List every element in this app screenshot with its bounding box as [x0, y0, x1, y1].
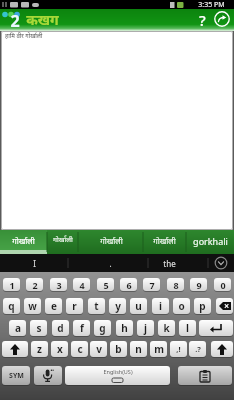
button[interactable]: y	[109, 298, 126, 314]
staticText: o	[178, 299, 185, 313]
staticText: गोर्खाली	[153, 235, 176, 246]
button[interactable]: गोर्खाली	[79, 229, 143, 251]
button[interactable]: s	[30, 320, 47, 336]
staticText: .	[109, 258, 112, 269]
staticText: 4	[79, 279, 85, 291]
staticText: 8	[173, 279, 179, 291]
staticText: g	[99, 321, 106, 335]
button[interactable]: e	[45, 298, 62, 314]
button[interactable]: 8	[167, 278, 184, 291]
button[interactable]: ?	[192, 9, 212, 31]
button[interactable]: 4	[73, 278, 90, 291]
staticText: n	[135, 342, 142, 356]
button[interactable]: k	[158, 320, 175, 336]
button[interactable]	[210, 254, 234, 272]
staticText: 2	[10, 10, 20, 30]
button[interactable]: SYM	[2, 366, 30, 385]
button[interactable]: i	[152, 298, 169, 314]
staticText: गोर्खाली	[53, 235, 73, 245]
button[interactable]: x	[51, 341, 68, 357]
staticText: 3	[56, 279, 62, 291]
button[interactable]: गोर्खाली	[2, 229, 45, 251]
button[interactable]: b	[110, 341, 127, 357]
staticText: d	[57, 321, 64, 335]
button[interactable]: English(US)	[65, 366, 170, 385]
button[interactable]: I	[14, 254, 54, 272]
staticText: 9	[196, 279, 202, 291]
staticText: English(US)	[103, 368, 133, 375]
staticText: s	[36, 321, 42, 335]
button[interactable]: 2	[26, 278, 43, 291]
staticText: q	[8, 299, 15, 313]
button[interactable]: w	[24, 298, 41, 314]
button[interactable]: v	[90, 341, 107, 357]
staticText: 2	[32, 279, 38, 291]
button[interactable]: p	[194, 298, 211, 314]
button[interactable]: j	[137, 320, 154, 336]
button[interactable]: l	[179, 320, 196, 336]
staticText: I	[33, 258, 36, 269]
button[interactable]: 5	[97, 278, 114, 291]
button[interactable]: 1	[3, 278, 20, 291]
staticText: r	[72, 299, 77, 313]
button[interactable]	[34, 366, 62, 385]
button[interactable]: .	[90, 254, 130, 272]
staticText: w	[28, 299, 37, 313]
staticText: 6	[126, 279, 132, 291]
staticText: .?	[195, 344, 201, 354]
staticText: k	[163, 321, 170, 335]
staticText: j	[144, 321, 147, 335]
staticText: 0	[220, 279, 226, 291]
staticText: 5	[103, 279, 109, 291]
button[interactable]	[178, 366, 232, 385]
button[interactable]: f	[73, 320, 90, 336]
button[interactable]: 7	[143, 278, 160, 291]
button[interactable]: गोर्खाली	[47, 229, 78, 251]
button[interactable]	[199, 320, 233, 336]
staticText: 1	[9, 279, 15, 291]
staticText: v	[96, 342, 102, 356]
staticText: 3:35 PM	[198, 0, 225, 9]
staticText: ,!	[176, 344, 181, 354]
button[interactable]: gorkhali	[187, 230, 234, 252]
button[interactable]: c	[71, 341, 88, 357]
button[interactable]: .?	[189, 341, 206, 357]
button[interactable]	[2, 341, 28, 357]
button[interactable]: m	[150, 341, 167, 357]
staticText: a	[15, 321, 21, 335]
button[interactable]: a	[9, 320, 26, 336]
staticText: t	[94, 299, 99, 313]
button[interactable]: n	[130, 341, 147, 357]
button[interactable]: q	[3, 298, 20, 314]
button[interactable]: z	[31, 341, 48, 357]
button[interactable]: d	[52, 320, 69, 336]
button[interactable]: o	[173, 298, 190, 314]
button[interactable]	[0, 230, 47, 254]
staticText: b	[115, 342, 122, 356]
button[interactable]: r	[66, 298, 83, 314]
button[interactable]: गोर्खाली	[143, 229, 186, 251]
button[interactable]: h	[116, 320, 133, 336]
staticText: गोर्खाली	[12, 235, 35, 246]
button[interactable]: 9	[190, 278, 207, 291]
button[interactable]: ,!	[170, 341, 187, 357]
button[interactable]: 0	[214, 278, 231, 291]
staticText: f	[80, 321, 84, 335]
button[interactable]: 6	[120, 278, 137, 291]
staticText: p	[199, 299, 206, 313]
button[interactable]: 3	[50, 278, 67, 291]
staticText: l	[186, 321, 189, 335]
staticText: कखग	[26, 10, 59, 29]
staticText: ?	[199, 10, 206, 30]
button[interactable]: g	[94, 320, 111, 336]
staticText: 7	[149, 279, 155, 291]
button[interactable]	[213, 10, 231, 28]
button[interactable]: t	[88, 298, 105, 314]
button[interactable]	[216, 298, 233, 314]
button[interactable]: हामि वीर गोर्खाली	[1, 31, 233, 230]
button[interactable]: u	[130, 298, 147, 314]
button[interactable]	[211, 341, 233, 357]
staticText: गोर्खाली	[100, 235, 123, 246]
staticText: gorkhali	[193, 235, 228, 247]
button[interactable]: the	[149, 254, 189, 272]
